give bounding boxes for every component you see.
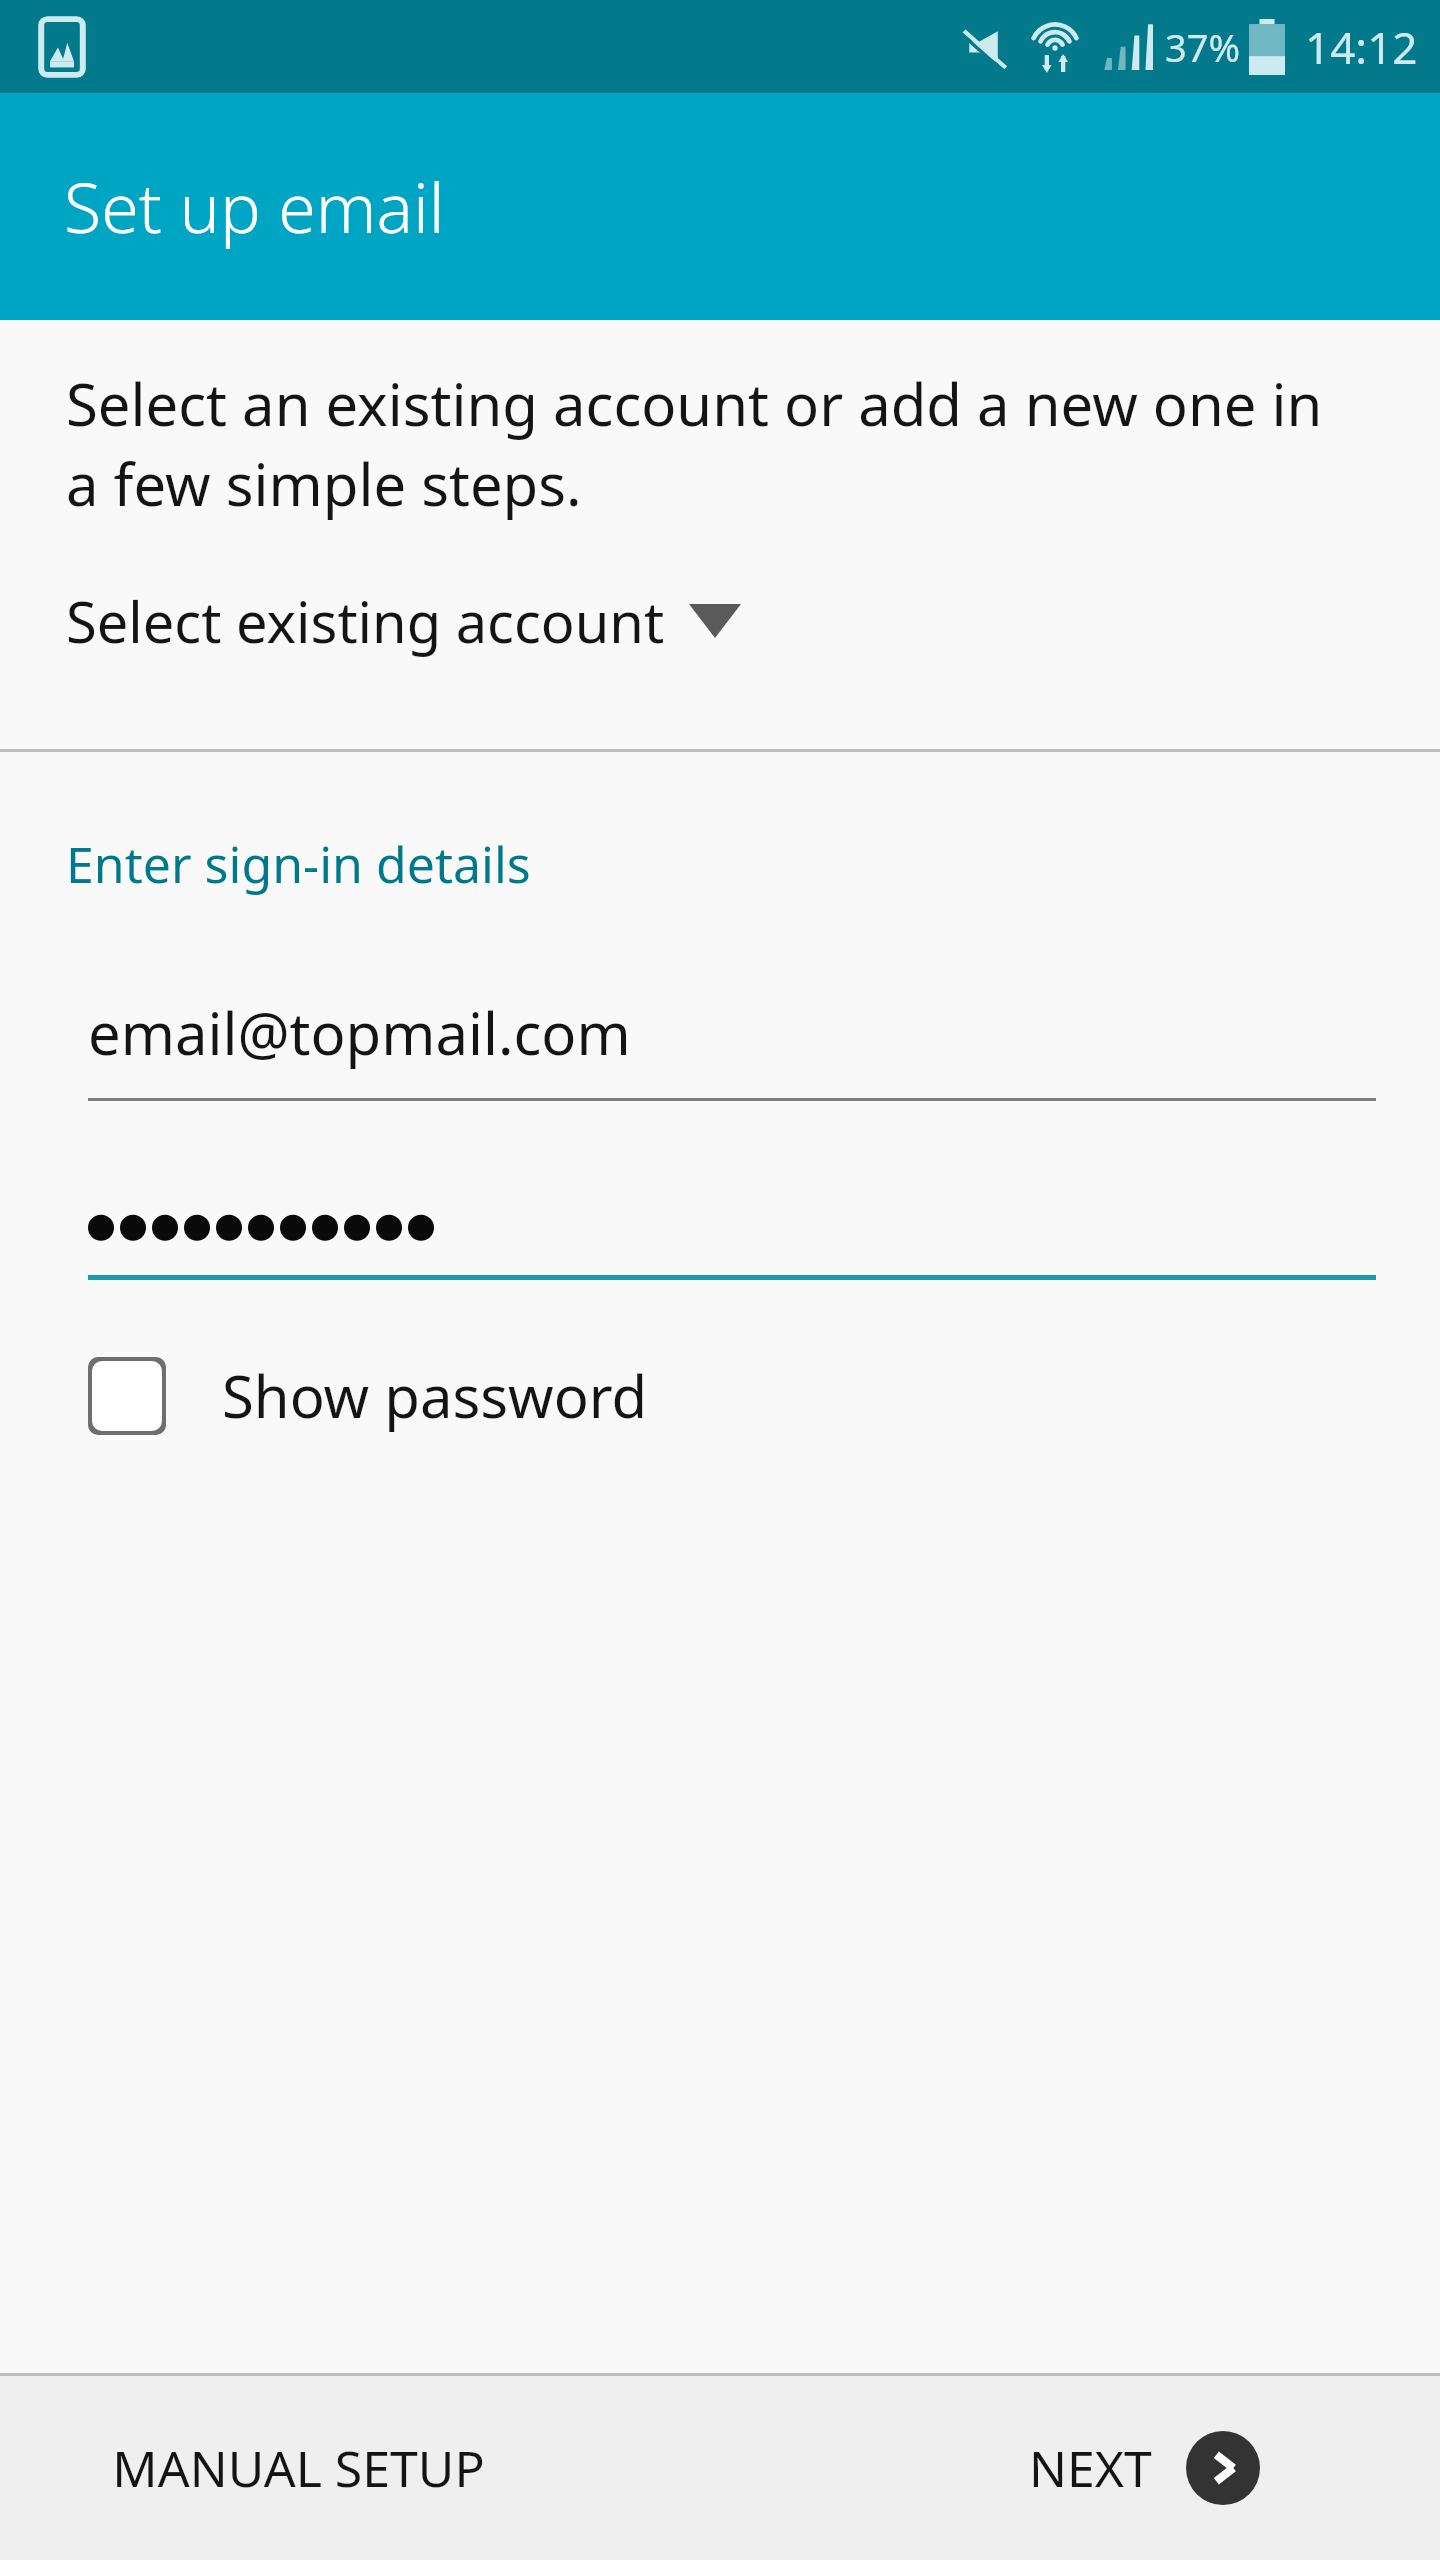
button[interactable]: Next xyxy=(999,2407,1290,2529)
staticText: 14:12 xyxy=(1305,17,1418,77)
button[interactable]: MANUAL SETUP xyxy=(60,2400,537,2536)
button[interactable]: Select existing account xyxy=(0,575,1440,667)
staticText: Set up email xyxy=(64,160,445,253)
staticText: NEXT xyxy=(1029,2434,1152,2502)
button[interactable] xyxy=(0,1193,1440,1280)
button[interactable]: Show password xyxy=(0,1342,688,1449)
button[interactable]: email@topmail.com xyxy=(0,993,1440,1101)
staticText: Show password xyxy=(222,1356,648,1435)
staticText: Select an existing account or add a new … xyxy=(66,364,1330,523)
staticText: 37% xyxy=(1165,21,1241,73)
staticText: MANUAL SETUP xyxy=(112,2434,485,2502)
staticText: Select existing account xyxy=(66,583,665,659)
staticText: Enter sign-in details xyxy=(66,830,531,898)
staticText: email@topmail.com xyxy=(88,993,631,1072)
